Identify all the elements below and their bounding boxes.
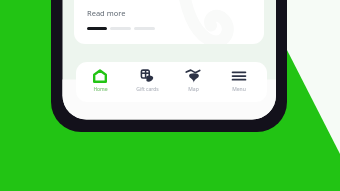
button[interactable]: Read more — [74, 0, 264, 44]
staticText: Gift cards — [136, 86, 159, 93]
staticText: Map — [188, 86, 199, 93]
button[interactable]: Gift cards — [124, 62, 170, 102]
button[interactable]: Menu — [216, 62, 262, 102]
button[interactable]: Map — [170, 62, 216, 102]
staticText: Home — [93, 86, 108, 93]
staticText: Menu — [232, 86, 246, 93]
staticText: Read more — [87, 8, 126, 18]
button[interactable]: Home — [77, 62, 123, 102]
